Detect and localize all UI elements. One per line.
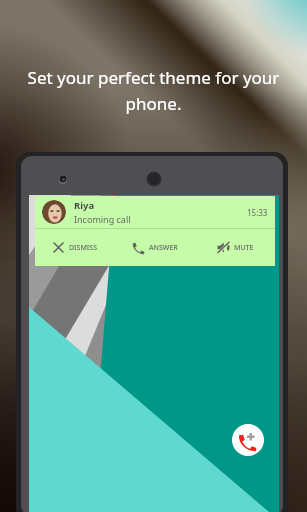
button[interactable]: Add contact	[232, 424, 264, 456]
button[interactable]: Riya	[35, 196, 275, 266]
button[interactable]: ANSWER	[115, 229, 195, 266]
staticText: Set your perfect theme for your phone.	[12, 66, 295, 115]
button[interactable]: MUTE	[195, 229, 275, 266]
staticText: ANSWER	[149, 243, 178, 253]
button[interactable]: DISMISS	[35, 229, 115, 266]
staticText: 15:33	[247, 207, 268, 218]
staticText: MUTE	[234, 243, 254, 253]
staticText: Incoming call	[74, 213, 131, 225]
staticText: DISMISS	[69, 243, 98, 253]
staticText: Riya	[74, 199, 95, 212]
